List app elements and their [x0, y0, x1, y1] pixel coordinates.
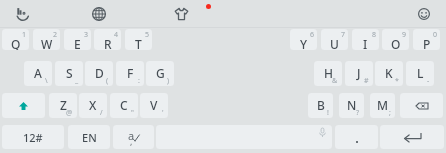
button[interactable]: B — [308, 93, 333, 118]
button[interactable]: Enter — [380, 125, 444, 149]
staticText: " — [131, 108, 134, 118]
staticText: K — [385, 65, 393, 81]
staticText: @ — [66, 108, 73, 118]
staticText: F — [127, 65, 134, 81]
staticText: P — [423, 36, 431, 50]
button[interactable]: O — [382, 29, 409, 50]
staticText: 6 — [310, 30, 315, 40]
button[interactable]: X — [79, 93, 107, 118]
button[interactable]: Change keyboard language — [86, 1, 112, 27]
staticText: E — [74, 36, 81, 50]
staticText: N — [347, 97, 357, 113]
button[interactable]: Emoji — [411, 1, 437, 27]
staticText: _ — [75, 76, 79, 86]
staticText: R — [104, 36, 112, 50]
button[interactable]: Voice input — [10, 0, 36, 27]
staticText: 7 — [341, 30, 346, 40]
button[interactable]: S — [55, 61, 83, 86]
staticText: * — [395, 76, 399, 86]
staticText: EN — [82, 130, 97, 145]
staticText: \ — [45, 76, 48, 86]
button[interactable]: T — [125, 29, 152, 50]
staticText: ? — [356, 108, 360, 118]
button[interactable]: K — [375, 61, 403, 86]
staticText: X — [89, 97, 97, 113]
staticText: H — [324, 65, 333, 81]
button[interactable]: E — [64, 29, 91, 50]
button[interactable]: H — [314, 61, 342, 86]
button[interactable]: Period — [335, 125, 378, 149]
staticText: W — [41, 36, 53, 50]
button[interactable]: Q — [2, 29, 29, 50]
button[interactable]: Symbols — [2, 125, 64, 149]
staticText: S — [66, 65, 73, 81]
button[interactable]: U — [321, 29, 348, 50]
staticText: J — [357, 65, 361, 81]
staticText: & — [332, 76, 338, 86]
staticText: V — [150, 97, 158, 113]
staticText: T — [135, 36, 142, 50]
button[interactable]: P — [413, 29, 440, 50]
staticText: / — [100, 108, 103, 118]
button[interactable]: J — [345, 61, 373, 86]
button[interactable]: M — [370, 93, 395, 118]
staticText: # — [364, 76, 369, 86]
staticText: Z — [60, 97, 67, 113]
button[interactable]: Z — [49, 93, 77, 118]
button[interactable]: F — [116, 61, 144, 86]
staticText: ! — [327, 108, 329, 118]
staticText: A — [34, 65, 42, 81]
staticText: ( — [106, 76, 109, 86]
staticText: 0 — [433, 30, 438, 40]
button[interactable]: A — [24, 61, 52, 86]
staticText: Y — [300, 36, 308, 50]
staticText: 4 — [114, 30, 119, 40]
staticText: ) — [167, 76, 170, 86]
staticText: D — [95, 65, 104, 81]
staticText: U — [330, 36, 339, 50]
staticText: - — [427, 76, 430, 86]
button[interactable]: Y — [290, 29, 317, 50]
button[interactable]: Language — [68, 125, 110, 149]
staticText: 5 — [145, 30, 150, 40]
staticText: I — [363, 36, 368, 50]
staticText: ' — [162, 108, 164, 118]
button[interactable]: R — [94, 29, 121, 50]
staticText: M — [377, 97, 389, 113]
staticText: 9 — [402, 30, 407, 40]
staticText: B — [317, 97, 325, 113]
button[interactable]: I — [352, 29, 379, 50]
staticText: C — [120, 97, 128, 113]
staticText: 3 — [84, 30, 89, 40]
staticText: Q — [11, 36, 21, 50]
staticText: ; — [389, 108, 391, 118]
button[interactable]: W — [33, 29, 60, 50]
staticText: G — [156, 65, 165, 81]
staticText: : — [138, 76, 140, 86]
staticText: 12# — [23, 130, 43, 145]
staticText: 1 — [22, 30, 27, 40]
button[interactable]: Handwriting — [113, 125, 154, 149]
button[interactable]: G — [146, 61, 174, 86]
button[interactable]: V — [140, 93, 168, 118]
button[interactable]: Backspace — [400, 93, 443, 118]
button[interactable]: Keyboard theme — [168, 1, 194, 27]
button[interactable]: L — [406, 61, 434, 86]
staticText: L — [417, 65, 424, 81]
button[interactable]: N — [339, 93, 364, 118]
button[interactable]: D — [85, 61, 113, 86]
staticText: , — [130, 135, 133, 147]
button[interactable]: C — [110, 93, 138, 118]
staticText: O — [391, 36, 401, 50]
staticText: 8 — [372, 30, 377, 40]
staticText: a — [128, 128, 135, 143]
button[interactable]: Shift — [2, 93, 45, 118]
staticText: 2 — [53, 30, 58, 40]
